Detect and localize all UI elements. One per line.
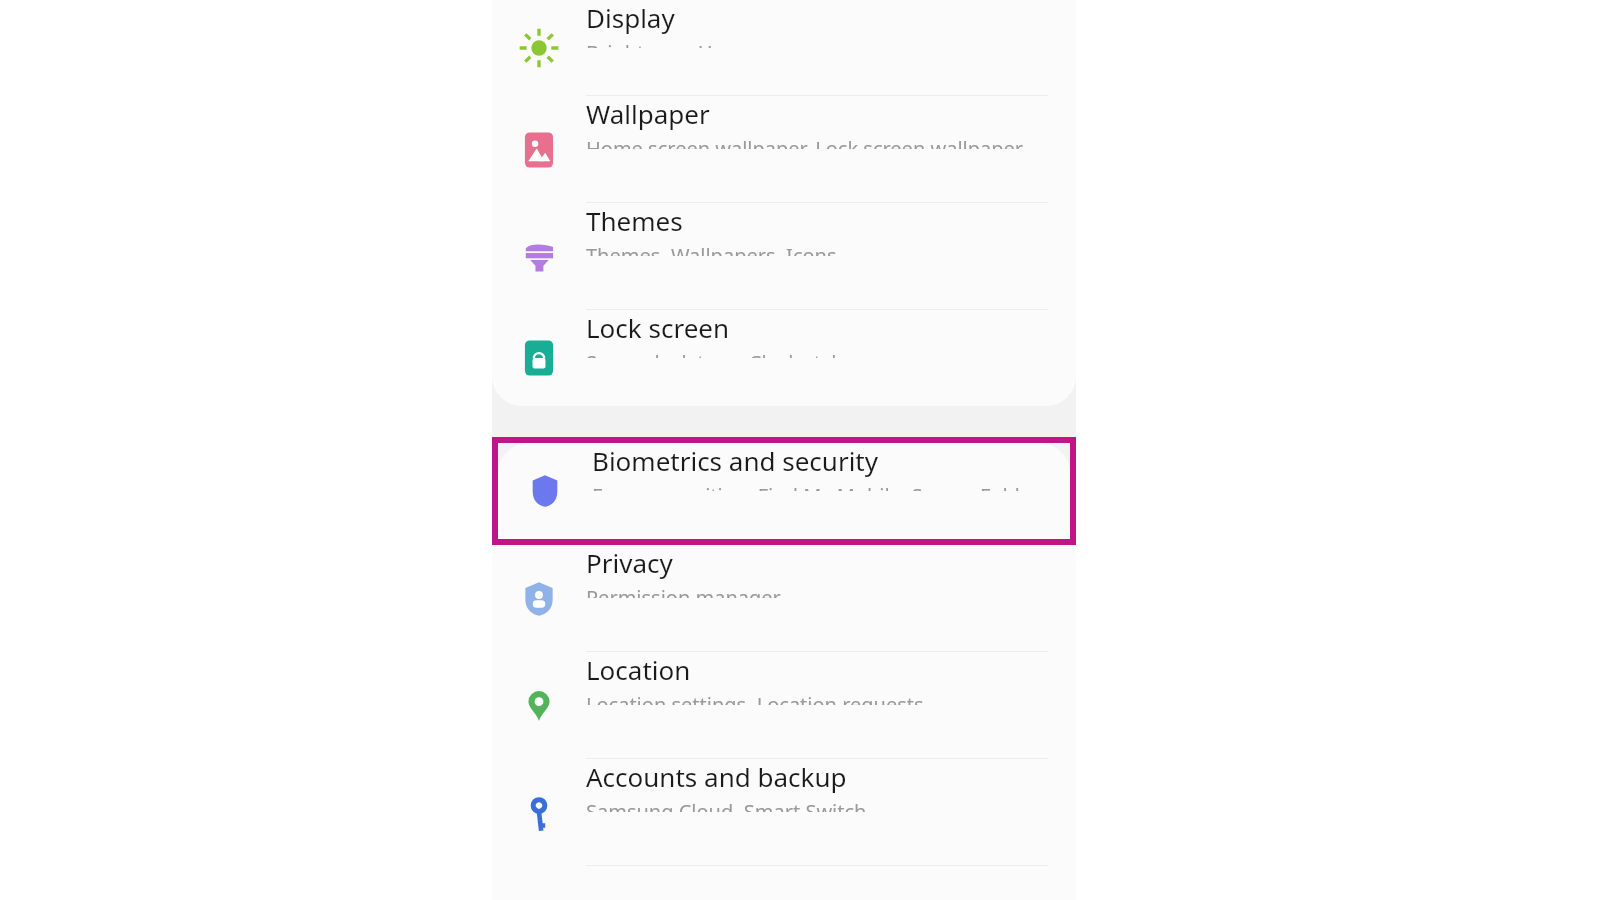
button[interactable]: Lock screen — [492, 310, 1076, 406]
staticText: Brightness, Home screen — [586, 39, 822, 48]
other: Accounts and backup — [492, 759, 586, 866]
staticText: Permission manager — [586, 584, 781, 598]
other: Themes — [492, 203, 586, 310]
other: Location — [492, 652, 586, 759]
button[interactable]: Display — [492, 0, 1076, 96]
other: Wallpaper — [492, 96, 586, 203]
staticText: Accounts and backup — [586, 759, 847, 794]
button[interactable]: Accounts and backup — [492, 759, 1076, 866]
staticText: Screen lock type, Clock style — [586, 349, 848, 358]
staticText: Home screen wallpaper, Lock screen wallp… — [586, 135, 1024, 149]
staticText: Face recognition, Find My Mobile, Secure… — [592, 482, 1040, 491]
staticText: Wallpaper — [586, 96, 710, 131]
staticText: Location — [586, 652, 691, 687]
other: Privacy — [492, 545, 586, 652]
button[interactable]: Privacy — [492, 545, 1076, 652]
button[interactable]: Wallpaper — [492, 96, 1076, 203]
staticText: Samsung Cloud, Smart Switch — [586, 798, 867, 812]
staticText: Display — [586, 0, 675, 35]
button[interactable]: Biometrics and security — [498, 443, 1070, 539]
staticText: Location settings, Location requests — [586, 691, 924, 705]
button[interactable]: Location — [492, 652, 1076, 759]
button[interactable]: Themes — [492, 203, 1076, 310]
other: Lock screen — [492, 310, 586, 406]
staticText: Biometrics and security — [592, 443, 879, 478]
staticText: Themes, Wallpapers, Icons — [586, 242, 837, 256]
other: Display — [492, 0, 586, 96]
staticText: Lock screen — [586, 310, 730, 345]
other: Biometrics and security — [498, 443, 592, 539]
staticText: Privacy — [586, 545, 673, 580]
button[interactable]: Biometrics and security — [498, 443, 1070, 539]
staticText: Themes — [586, 203, 683, 238]
